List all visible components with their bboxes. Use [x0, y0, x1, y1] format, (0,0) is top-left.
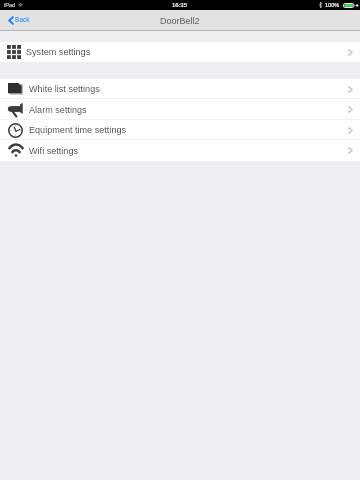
button[interactable]: Equipment time settings [0, 120, 360, 140]
button[interactable]: Alarm settings [0, 99, 360, 120]
staticText: White list settings [29, 84, 100, 94]
button[interactable]: Back [0, 13, 40, 28]
staticText: Back [15, 16, 30, 23]
staticText: Equipment time settings [29, 125, 127, 135]
button[interactable]: White list settings [0, 79, 360, 99]
staticText: 100% [325, 2, 340, 8]
staticText: iPad [4, 2, 16, 8]
staticText: DoorBell2 [160, 16, 200, 26]
staticText: Wifi settings [29, 146, 79, 156]
button[interactable]: Wifi settings [0, 140, 360, 161]
staticText: Alarm settings [29, 105, 87, 115]
staticText: System settings [26, 47, 91, 57]
staticText: 16:35 [172, 2, 188, 9]
button[interactable]: System settings [0, 42, 360, 62]
